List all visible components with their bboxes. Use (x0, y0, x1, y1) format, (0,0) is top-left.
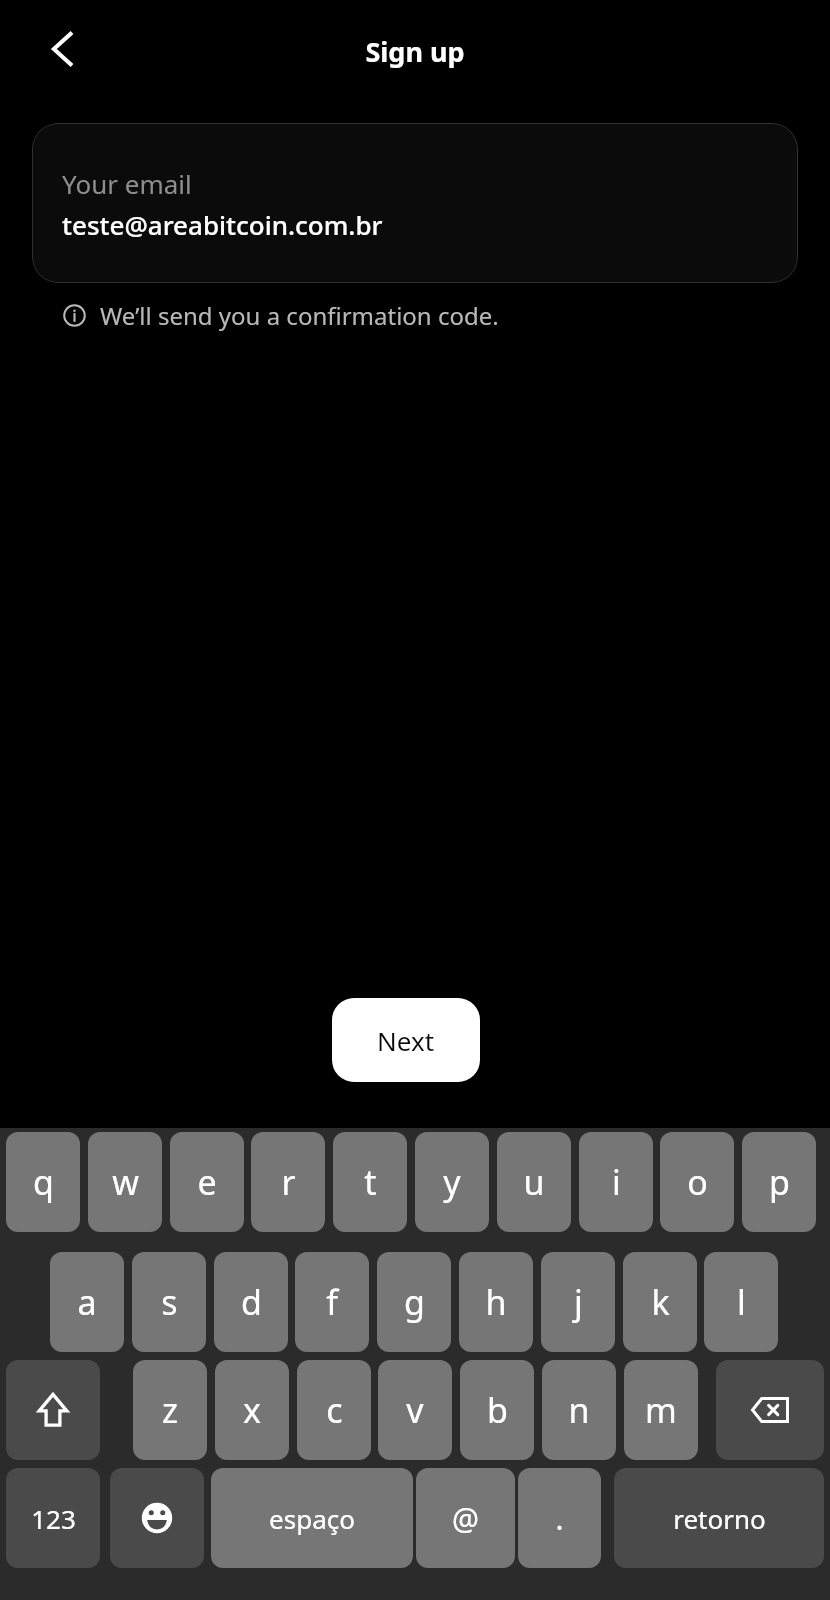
staticText: m (645, 1387, 677, 1433)
button[interactable]: . (518, 1468, 601, 1568)
staticText: i (612, 1159, 621, 1205)
button[interactable]: e (170, 1132, 244, 1232)
staticText: e (197, 1159, 217, 1205)
button[interactable]: k (623, 1252, 697, 1352)
button[interactable]: n (542, 1360, 616, 1460)
staticText: j (574, 1279, 583, 1325)
button[interactable]: v (378, 1360, 452, 1460)
staticText: Sign up (0, 33, 830, 70)
staticText: l (737, 1279, 746, 1325)
staticText: s (161, 1279, 178, 1325)
button[interactable]: f (295, 1252, 369, 1352)
staticText: Next (377, 1023, 435, 1058)
button[interactable]: Next (332, 998, 480, 1082)
button[interactable]: espaço (211, 1468, 413, 1568)
button[interactable]: Shift (6, 1360, 100, 1460)
staticText: Your email (62, 166, 192, 201)
staticText: g (404, 1279, 425, 1325)
button[interactable]: @ (416, 1468, 515, 1568)
button[interactable]: i (579, 1132, 653, 1232)
button[interactable]: d (214, 1252, 288, 1352)
staticText: d (241, 1279, 262, 1325)
button[interactable]: p (742, 1132, 816, 1232)
button[interactable]: w (88, 1132, 162, 1232)
button[interactable]: retorno (614, 1468, 824, 1568)
staticText: c (326, 1387, 343, 1433)
staticText: @ (452, 1498, 479, 1539)
button[interactable]: o (660, 1132, 734, 1232)
staticText: p (769, 1159, 790, 1205)
button[interactable]: m (624, 1360, 698, 1460)
staticText: b (487, 1387, 508, 1433)
staticText: We’ll send you a confirmation code. (100, 299, 499, 332)
button[interactable]: b (460, 1360, 534, 1460)
button[interactable]: Backspace (716, 1360, 824, 1460)
button[interactable]: t (333, 1132, 407, 1232)
button[interactable]: y (415, 1132, 489, 1232)
staticText: . (555, 1498, 564, 1539)
button[interactable]: h (459, 1252, 533, 1352)
staticText: n (568, 1387, 590, 1433)
button[interactable]: q (6, 1132, 80, 1232)
staticText: o (687, 1159, 708, 1205)
button[interactable]: r (251, 1132, 325, 1232)
staticText: f (326, 1279, 338, 1325)
button[interactable]: Back (34, 22, 88, 76)
button[interactable]: a (50, 1252, 124, 1352)
staticText: retorno (673, 1501, 766, 1536)
staticText: 123 (31, 1501, 76, 1536)
staticText: h (485, 1279, 507, 1325)
button[interactable]: x (215, 1360, 289, 1460)
staticText: v (406, 1387, 424, 1433)
staticText: k (651, 1279, 670, 1325)
staticText: r (281, 1159, 296, 1205)
staticText: z (162, 1387, 178, 1433)
button[interactable]: Your email (32, 123, 798, 283)
button[interactable]: l (704, 1252, 778, 1352)
button[interactable]: 123 (6, 1468, 100, 1568)
staticText: y (443, 1159, 461, 1205)
staticText: espaço (269, 1501, 355, 1536)
staticText: teste@areabitcoin.com.br (62, 207, 383, 242)
button[interactable]: g (377, 1252, 451, 1352)
button[interactable]: s (132, 1252, 206, 1352)
staticText: q (33, 1159, 54, 1205)
staticText: t (364, 1159, 377, 1205)
staticText: x (243, 1387, 261, 1433)
staticText: u (523, 1159, 545, 1205)
button[interactable]: Emoji (110, 1468, 204, 1568)
staticText: a (77, 1279, 97, 1325)
button[interactable]: u (497, 1132, 571, 1232)
button[interactable]: c (297, 1360, 371, 1460)
button[interactable]: z (133, 1360, 207, 1460)
staticText: w (112, 1159, 139, 1205)
button[interactable]: j (541, 1252, 615, 1352)
